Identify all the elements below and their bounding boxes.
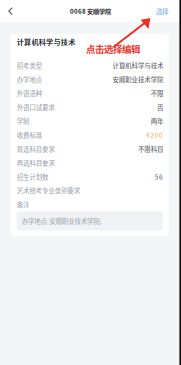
staticText: 办学地点:安顺职业技术学院;: [22, 216, 102, 226]
staticText: 0068 安顺学院: [70, 7, 111, 16]
button[interactable]: 选择: [151, 0, 173, 22]
staticText: 艺术统考专业类别要求: [17, 186, 80, 195]
staticText: 收费标准: [17, 130, 42, 140]
staticText: 56: [155, 172, 163, 181]
staticText: 学制: [17, 116, 29, 126]
staticText: 外语语种: [17, 89, 42, 98]
staticText: 计算机科学与技术: [17, 37, 75, 47]
staticText: 备注: [17, 200, 29, 209]
staticText: 点击选择编辑: [86, 42, 140, 55]
staticText: 再选科目要求: [17, 158, 54, 167]
staticText: 办学地点: [17, 75, 42, 84]
staticText: 4200: [146, 130, 163, 140]
staticText: 首选科目要求: [17, 144, 54, 154]
staticText: 否: [157, 102, 163, 112]
staticText: 不限科目: [138, 144, 163, 154]
staticText: 计算机科学与技术: [113, 61, 163, 70]
staticText: 招考类型: [17, 61, 42, 70]
staticText: 不限: [151, 89, 163, 98]
staticText: 选择: [156, 6, 168, 16]
button[interactable]: Back: [0, 0, 21, 22]
staticText: 安顺职业技术学院: [113, 75, 163, 84]
staticText: 两年: [151, 116, 163, 126]
staticText: 招生计划数: [17, 172, 48, 181]
staticText: 外语口试要求: [17, 102, 54, 112]
